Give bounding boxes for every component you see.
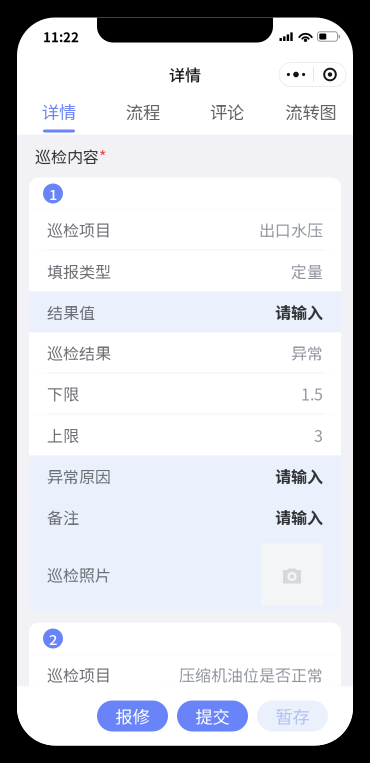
staticText: 2 (49, 628, 57, 649)
button[interactable]: 异常原因 (29, 455, 341, 496)
button[interactable]: 流程 (101, 93, 185, 134)
button[interactable]: 上限 (29, 414, 341, 455)
staticText: * (99, 144, 106, 168)
button[interactable]: 结果值 (29, 291, 341, 332)
staticText: 下限 (47, 382, 79, 405)
staticText: 暂存 (275, 703, 309, 729)
staticText: 评论 (210, 99, 244, 124)
staticText: 结果值 (47, 300, 95, 324)
button[interactable]: 报修 (97, 700, 168, 731)
staticText: 详情 (169, 63, 201, 86)
staticText: 1 (49, 183, 57, 204)
staticText: 请选择 (275, 745, 323, 763)
staticText: 1.5 (301, 382, 323, 405)
staticText: 流程 (126, 99, 160, 124)
button[interactable]: 填报类型 (29, 695, 341, 736)
button[interactable]: 提交 (177, 700, 248, 731)
staticText: 定量 (291, 259, 323, 283)
staticText: 报修 (115, 703, 149, 729)
staticText: 结果值 (47, 745, 95, 763)
button[interactable]: 填报类型 (29, 250, 341, 291)
staticText: 巡检内容 (35, 144, 99, 168)
staticText: 上限 (47, 423, 79, 447)
button[interactable]: 评论 (185, 93, 269, 134)
staticText: 出口水压 (259, 218, 323, 241)
staticText: 备注 (47, 505, 79, 529)
staticText: 定性 (291, 704, 323, 728)
staticText: 请输入 (275, 505, 323, 529)
button[interactable]: 更多 (279, 62, 313, 86)
staticText: 巡检照片 (47, 563, 111, 586)
staticText: 异常 (291, 341, 323, 364)
staticText: 填报类型 (47, 259, 111, 283)
staticText: 巡检项目 (47, 663, 111, 686)
staticText: 压缩机油位是否正常 (179, 663, 323, 686)
button[interactable]: 下限 (29, 373, 341, 414)
staticText: 详情 (42, 99, 76, 124)
staticText: 异常原因 (47, 464, 111, 488)
staticText: 填报类型 (47, 704, 111, 728)
staticText: 巡检结果 (47, 341, 111, 364)
button[interactable]: 关闭 (314, 62, 346, 86)
staticText: 11:22 (43, 27, 79, 46)
button[interactable]: 详情 (17, 93, 101, 134)
button[interactable]: 巡检项目 (29, 654, 341, 695)
staticText: 请输入 (275, 464, 323, 488)
staticText: 3 (314, 423, 323, 447)
button[interactable]: 巡检结果 (29, 332, 341, 373)
staticText: 请输入 (275, 300, 323, 324)
staticText: 巡检项目 (47, 218, 111, 241)
button[interactable]: 巡检项目 (29, 209, 341, 250)
button[interactable]: 上传巡检照片 (261, 543, 323, 605)
button[interactable]: 备注 (29, 496, 341, 537)
staticText: 提交 (195, 703, 229, 729)
button[interactable]: 流转图 (269, 93, 353, 134)
button[interactable]: 暂存 (257, 700, 328, 731)
button[interactable]: 结果值 (29, 736, 341, 763)
staticText: 流转图 (285, 99, 336, 124)
